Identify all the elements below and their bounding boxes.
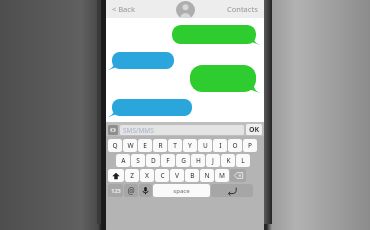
button[interactable]: Sent message: [172, 25, 256, 44]
button[interactable]: Return: [211, 184, 253, 197]
button[interactable]: OK: [246, 124, 262, 135]
button[interactable]: L: [236, 154, 250, 167]
staticText: A: [121, 156, 126, 165]
staticText: J: [212, 156, 214, 165]
staticText: Q: [112, 141, 118, 150]
button[interactable]: Contacts: [225, 1, 260, 17]
staticText: U: [203, 141, 208, 150]
button[interactable]: P: [243, 139, 257, 152]
button[interactable]: Shift: [108, 169, 124, 182]
staticText: M: [219, 171, 225, 180]
staticText: < Back: [112, 4, 135, 14]
staticText: @: [127, 185, 135, 196]
button[interactable]: R: [153, 139, 167, 152]
button[interactable]: Sent message: [190, 65, 256, 92]
button[interactable]: Attach: [108, 125, 118, 135]
button[interactable]: Microphone: [139, 184, 152, 197]
button[interactable]: T: [168, 139, 182, 152]
button[interactable]: X: [140, 169, 154, 182]
staticText: C: [160, 171, 165, 180]
button[interactable]: W: [123, 139, 137, 152]
button[interactable]: A: [116, 154, 130, 167]
staticText: D: [151, 156, 156, 165]
button[interactable]: V: [170, 169, 184, 182]
staticText: SMS/MMS: [123, 126, 154, 135]
staticText: H: [196, 156, 201, 165]
staticText: X: [145, 171, 149, 180]
staticText: O: [232, 141, 238, 150]
button[interactable]: Y: [183, 139, 197, 152]
button[interactable]: Backspace: [230, 169, 246, 182]
button[interactable]: G: [176, 154, 190, 167]
staticText: space: [173, 187, 190, 195]
button[interactable]: Z: [125, 169, 139, 182]
staticText: K: [226, 156, 231, 165]
staticText: F: [166, 156, 170, 165]
button[interactable]: U: [198, 139, 212, 152]
staticText: G: [181, 156, 186, 165]
staticText: W: [127, 141, 134, 150]
staticText: S: [136, 156, 140, 165]
button[interactable]: < Back: [110, 1, 137, 17]
button[interactable]: O: [228, 139, 242, 152]
button[interactable]: @: [124, 184, 138, 197]
staticText: Z: [130, 171, 134, 180]
staticText: I: [219, 141, 222, 150]
staticText: B: [190, 171, 195, 180]
staticText: OK: [249, 125, 260, 135]
button[interactable]: F: [161, 154, 175, 167]
button[interactable]: M: [215, 169, 229, 182]
button[interactable]: D: [146, 154, 160, 167]
button[interactable]: 123: [108, 184, 123, 197]
button[interactable]: N: [200, 169, 214, 182]
staticText: Contacts: [227, 4, 258, 14]
staticText: V: [175, 171, 179, 180]
staticText: R: [158, 141, 163, 150]
button[interactable]: C: [155, 169, 169, 182]
button[interactable]: H: [191, 154, 205, 167]
button[interactable]: space: [153, 184, 210, 197]
button[interactable]: E: [138, 139, 152, 152]
staticText: P: [248, 141, 252, 150]
button[interactable]: Contact avatar: [176, 1, 195, 19]
button[interactable]: SMS/MMS: [120, 125, 244, 135]
button[interactable]: I: [213, 139, 227, 152]
staticText: 123: [111, 187, 121, 194]
button[interactable]: S: [131, 154, 145, 167]
staticText: L: [241, 156, 245, 165]
button[interactable]: J: [206, 154, 220, 167]
staticText: N: [204, 171, 210, 180]
staticText: E: [143, 141, 147, 150]
staticText: T: [173, 141, 177, 150]
button[interactable]: Received message: [112, 52, 174, 69]
button[interactable]: B: [185, 169, 199, 182]
button[interactable]: Received message: [112, 99, 192, 116]
button[interactable]: K: [221, 154, 235, 167]
staticText: Y: [188, 141, 192, 150]
button[interactable]: Q: [108, 139, 122, 152]
